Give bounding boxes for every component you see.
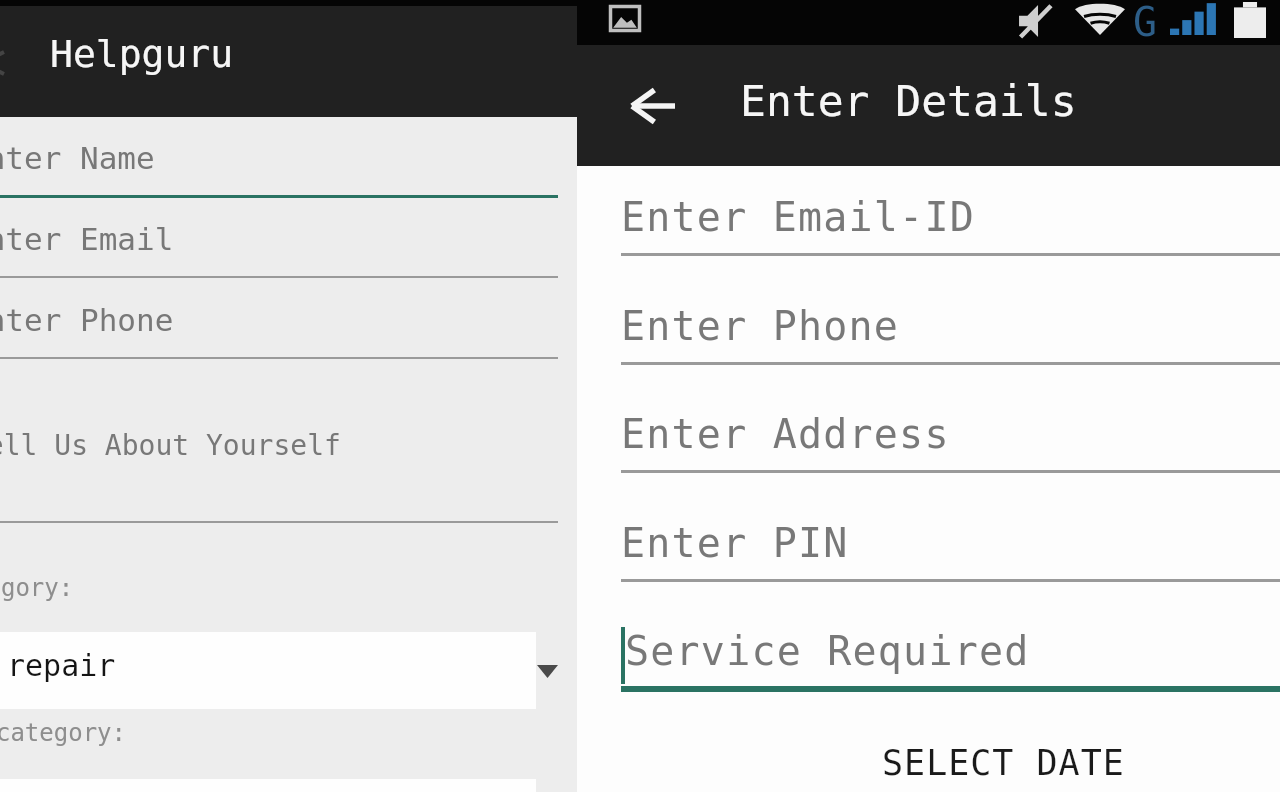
staticText: Enter Name [0,140,526,176]
staticText: Select sub category: [0,719,126,747]
button[interactable]: Enter Phone [0,294,558,360]
button[interactable]: Enter Name [0,132,558,198]
staticText: Enter Phone [621,303,900,350]
staticText: SELECT DATE [882,743,1125,784]
other: Back [0,52,4,74]
staticText: Enter Phone [0,302,526,338]
staticText: Service Required [625,628,1030,675]
staticText: Enter Details [740,76,1077,126]
staticText: Enter Email-ID [621,194,975,241]
button[interactable]: Enter Phone [621,283,1280,365]
staticText: Enter Address [621,411,950,458]
button[interactable]: SELECT DATE [845,734,1161,792]
button[interactable]: Enter Email-ID [621,174,1280,256]
button[interactable]: Enter Email [0,213,558,279]
staticText: Enter Email [0,221,526,257]
staticText: Enter PIN [621,520,849,567]
staticText: Select Category: [0,574,74,602]
staticText: G [1133,0,1158,46]
staticText: Tell Us About Yourself [0,429,528,462]
button[interactable]: Enter PIN [621,500,1280,582]
staticText: Helpguru [50,32,234,76]
staticText: repair [7,648,116,683]
button[interactable]: Enter Address [621,391,1280,473]
button[interactable]: Back [607,63,699,149]
button[interactable]: Service Required [621,608,1280,690]
button[interactable]: repair [0,632,536,709]
button[interactable]: Tell Us About Yourself [0,416,558,524]
other: Open category dropdown [537,665,558,678]
